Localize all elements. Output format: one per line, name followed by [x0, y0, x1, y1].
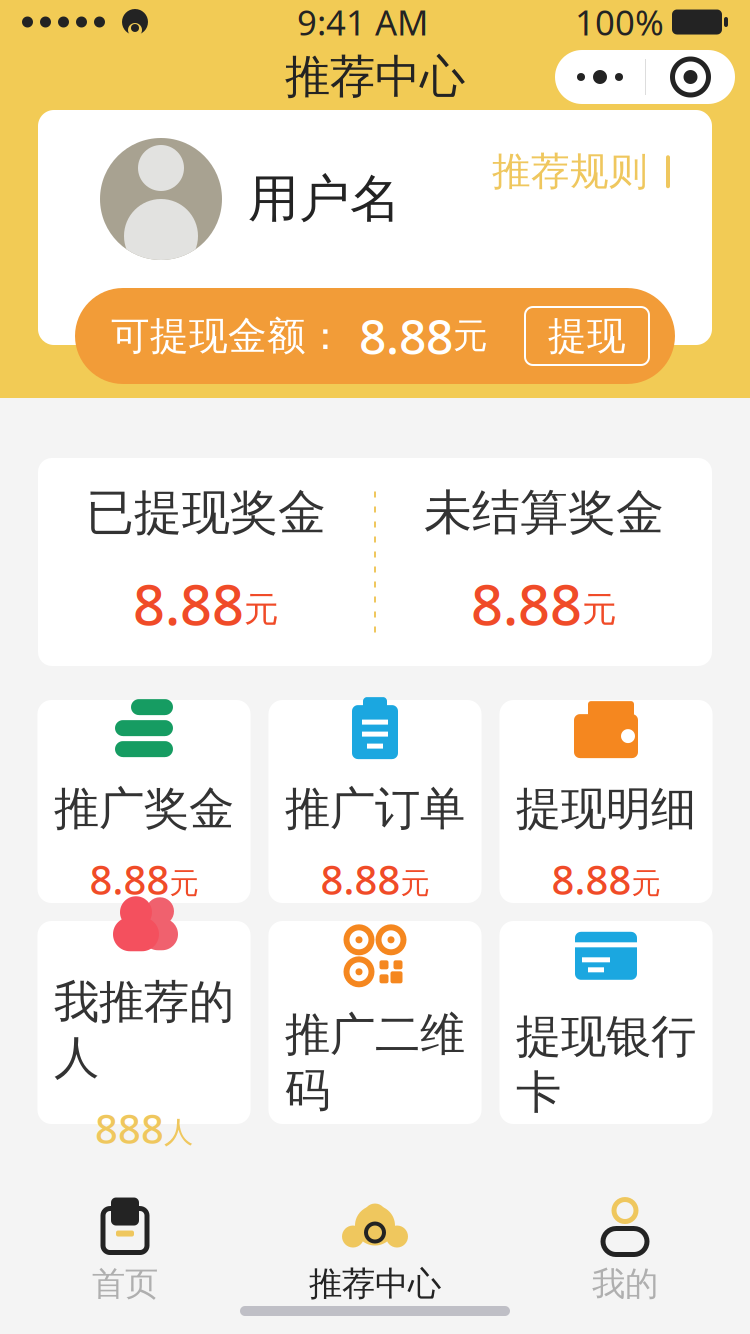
- staticText: 8.88: [133, 566, 244, 641]
- button[interactable]: 推荐规则: [478, 138, 690, 205]
- staticText: 100%: [575, 0, 664, 45]
- button[interactable]: 推广二维码: [268, 921, 481, 1124]
- staticText: 我的: [592, 1263, 658, 1304]
- staticText: 推广奖金: [54, 781, 234, 837]
- staticText: 人: [164, 1114, 193, 1150]
- button[interactable]: 推广奖金: [37, 700, 250, 903]
- staticText: 888: [95, 1102, 164, 1155]
- staticText: 未结算奖金: [424, 483, 664, 542]
- button[interactable]: More options and Close: [555, 50, 735, 104]
- staticText: 首页: [92, 1263, 158, 1304]
- staticText: 推荐中心: [285, 49, 465, 105]
- button[interactable]: 提现银行卡: [499, 921, 712, 1124]
- staticText: 8.88: [551, 853, 631, 906]
- staticText: 元: [631, 865, 660, 901]
- staticText: 推荐中心: [309, 1263, 441, 1304]
- button[interactable]: 推广订单: [268, 700, 481, 903]
- staticText: 推广订单: [285, 781, 465, 837]
- staticText: 元: [244, 588, 279, 631]
- staticText: 已提现奖金: [86, 483, 326, 542]
- staticText: 可提现金额：: [111, 312, 345, 360]
- staticText: 8.88: [471, 566, 582, 641]
- staticText: 元: [582, 588, 617, 631]
- staticText: 元: [453, 315, 488, 357]
- staticText: 元: [169, 865, 198, 901]
- staticText: 提现明细: [516, 781, 696, 837]
- button[interactable]: 提现明细: [499, 700, 712, 903]
- staticText: 推广二维码: [285, 1007, 465, 1118]
- button[interactable]: 我推荐的人: [37, 921, 250, 1124]
- button[interactable]: 提现: [525, 307, 649, 365]
- button[interactable]: 我的: [500, 1198, 750, 1306]
- staticText: 推荐规则: [492, 148, 648, 195]
- staticText: 我推荐的人: [54, 974, 234, 1086]
- staticText: 提现: [548, 312, 626, 360]
- staticText: 9:41 AM: [297, 0, 428, 45]
- staticText: 元: [400, 865, 429, 901]
- button[interactable]: 推荐中心: [250, 1198, 500, 1306]
- staticText: 提现银行卡: [516, 1009, 696, 1120]
- staticText: 8.88: [89, 853, 169, 906]
- button[interactable]: 首页: [0, 1198, 250, 1306]
- staticText: 用户名: [248, 168, 401, 230]
- staticText: 8.88: [320, 853, 400, 906]
- staticText: 8.88: [359, 304, 453, 368]
